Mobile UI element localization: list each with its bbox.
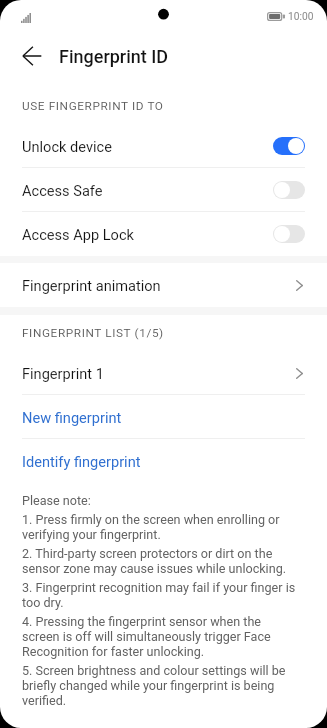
staticText: Access Safe bbox=[22, 182, 103, 199]
staticText: 4. Pressing the fingerprint sensor when … bbox=[22, 614, 299, 659]
staticText: Please note: bbox=[22, 493, 299, 508]
staticText: USE FINGERPRINT ID TO bbox=[22, 99, 164, 113]
staticText: 5. Screen brightness and colour settings… bbox=[22, 663, 299, 708]
staticText: Fingerprint ID bbox=[59, 46, 169, 67]
staticText: 3. Fingerprint recognition may fail if y… bbox=[22, 580, 299, 610]
staticText: Identify fingerprint bbox=[22, 453, 141, 470]
button[interactable]: Access App Lock bbox=[0, 212, 327, 256]
staticText: Fingerprint 1 bbox=[22, 365, 104, 382]
button[interactable]: Access Safe bbox=[0, 168, 327, 212]
button[interactable]: Identify fingerprint bbox=[0, 439, 327, 483]
button[interactable]: New fingerprint bbox=[0, 395, 327, 439]
staticText: Access App Lock bbox=[22, 226, 134, 243]
button[interactable]: Fingerprint animation bbox=[0, 263, 327, 307]
staticText: Unlock device bbox=[22, 138, 112, 155]
staticText: FINGERPRINT LIST (1/5) bbox=[22, 326, 164, 340]
staticText: 1. Press firmly on the screen when enrol… bbox=[22, 512, 299, 542]
button[interactable]: Fingerprint 1 bbox=[0, 351, 327, 395]
staticText: New fingerprint bbox=[22, 409, 122, 426]
button[interactable]: Back bbox=[10, 34, 54, 78]
staticText: 10:00 bbox=[288, 11, 314, 23]
button[interactable]: Unlock device bbox=[0, 124, 327, 168]
staticText: 2. Third-party screen protectors or dirt… bbox=[22, 546, 299, 576]
staticText: Fingerprint animation bbox=[22, 277, 161, 294]
